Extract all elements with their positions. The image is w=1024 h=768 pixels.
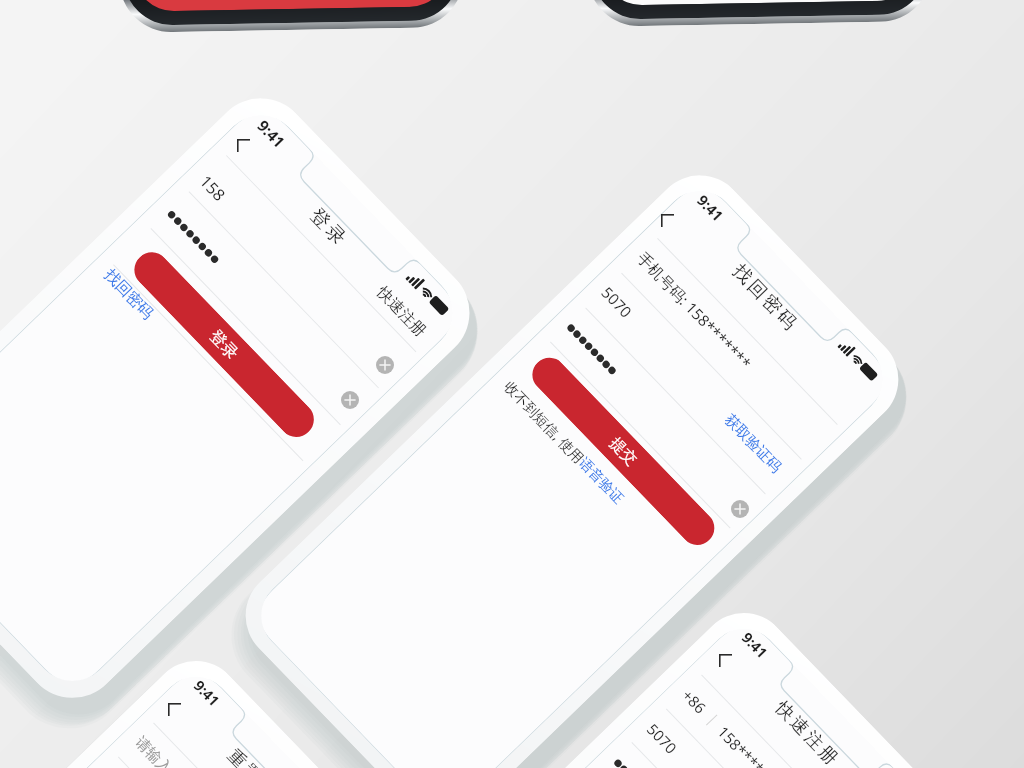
staticText: 请输入新的密码	[131, 733, 218, 768]
staticText: 获取验证码	[720, 410, 785, 477]
staticText: 9:41	[253, 115, 290, 152]
button[interactable]: 找回密码	[97, 262, 161, 327]
staticText: 登录	[205, 325, 243, 364]
button[interactable]: 获取验证码	[714, 404, 792, 483]
button[interactable]: Add	[731, 500, 749, 518]
staticText: 找回密码	[728, 260, 803, 336]
staticText: 9:41	[189, 676, 224, 711]
button[interactable]: Add	[341, 391, 359, 409]
staticText: 提交	[605, 433, 642, 470]
staticText: 重置密码	[223, 745, 297, 768]
button[interactable]: 收不到短信, 使用	[497, 374, 631, 511]
button[interactable]: 提交	[525, 351, 721, 552]
staticText: 5070	[643, 719, 682, 758]
button[interactable]: Add	[376, 356, 394, 374]
staticText: 158*******	[713, 722, 786, 768]
staticText: 快速注册	[373, 282, 431, 342]
staticText: 快速注册	[771, 697, 845, 768]
staticText: 9:41	[693, 190, 728, 226]
staticText: 收不到短信, 使用	[500, 377, 588, 467]
button[interactable]: 快速注册	[366, 276, 437, 348]
staticText: 请再次输入密码	[96, 767, 183, 768]
button[interactable]: 登录	[127, 245, 321, 444]
staticText: 找回密码	[100, 265, 158, 324]
staticText: 语音验证	[575, 454, 628, 507]
staticText: 5070	[597, 282, 637, 323]
staticText: +86	[678, 685, 710, 718]
staticText: 9:41	[737, 628, 772, 663]
staticText: 158	[195, 170, 230, 206]
staticText: 登录	[305, 203, 353, 252]
staticText: 手机号码: 158*******	[633, 248, 755, 374]
